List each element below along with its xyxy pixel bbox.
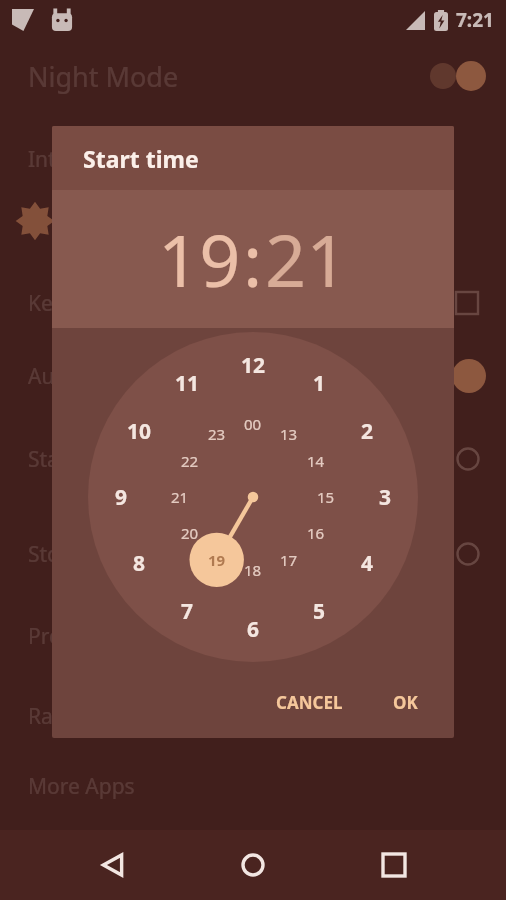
staticText: 16 [307,523,325,543]
staticText: 10 [127,417,152,446]
other: Night mode toggle [430,61,486,91]
button[interactable]: Night Mode [0,44,506,108]
staticText: 00 [244,414,262,434]
staticText: Start time [28,445,126,474]
staticText: 4 [361,549,374,578]
staticText: Start time [83,143,199,174]
staticText: 23 [208,424,226,444]
staticText: Intensity [28,145,115,174]
staticText: 21 [171,487,189,507]
staticText: Night Mode [28,58,179,95]
staticText: 20 [181,523,199,543]
button[interactable]: OK [379,681,432,724]
staticText: 13 [280,424,298,444]
staticText: Pro version [28,622,140,651]
staticText: OK [393,691,418,714]
button[interactable] [0,190,506,252]
staticText: 17 [280,550,298,570]
button[interactable]: Start time [0,428,506,490]
button[interactable]: Pro version [0,605,506,667]
button[interactable]: Back [85,837,141,893]
button[interactable]: Stop time [0,523,506,585]
staticText: 7 [181,597,194,626]
staticText: 11 [175,369,200,398]
staticText: 15 [317,487,335,507]
button[interactable]: 19 [156,210,243,308]
button[interactable]: Rate app [0,685,506,747]
staticText: 8 [133,549,146,578]
staticText: Auto start [28,362,126,391]
button[interactable]: CANCEL [262,681,357,724]
staticText: 2 [361,417,374,446]
staticText: CANCEL [276,691,343,714]
staticText: 14 [307,451,325,471]
staticText: More Apps [28,772,135,801]
staticText: Keep screen on [28,289,180,318]
staticText: Rate app [28,702,116,731]
staticText: 5 [313,597,326,626]
staticText: 22 [181,451,199,471]
staticText: 9 [115,483,128,512]
staticText: : [243,210,263,308]
staticText: Stop time [28,540,123,569]
button[interactable]: Recents [366,837,422,893]
button[interactable]: Keep screen on [0,272,506,334]
staticText: 12 [241,351,266,380]
staticText: 1 [313,369,326,398]
staticText: 3 [379,483,392,512]
staticText: 19 [208,550,226,570]
button[interactable]: Intensity [0,128,506,190]
staticText: 7:21 [456,7,494,33]
staticText: 18 [244,560,262,580]
button[interactable]: 21 [263,210,350,308]
button[interactable]: Auto start [0,345,506,407]
button[interactable]: More Apps [0,755,506,817]
button[interactable]: Clock hour picker [88,332,418,662]
button[interactable]: Home [225,837,281,893]
staticText: 6 [247,615,260,644]
